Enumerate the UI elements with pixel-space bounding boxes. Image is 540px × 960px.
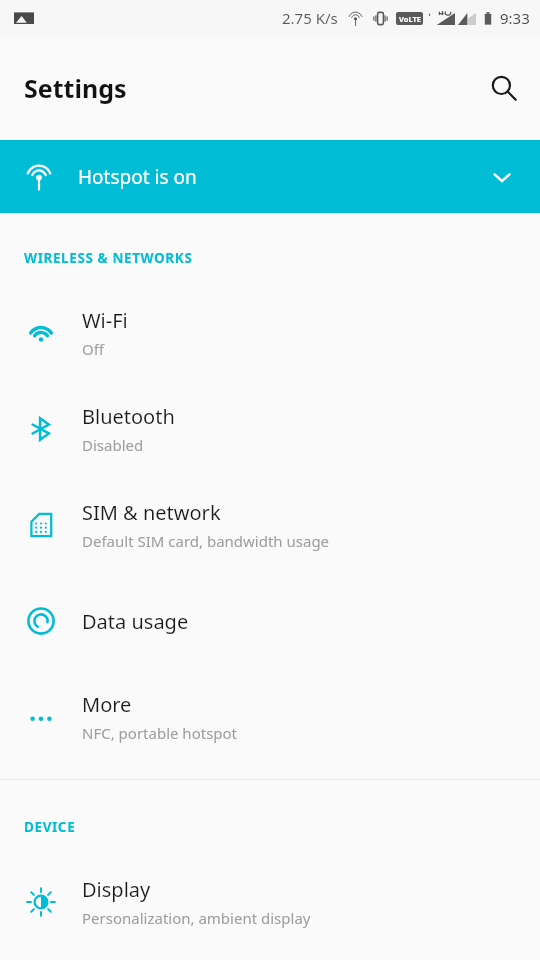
button[interactable]: Expand hotspot details [482, 157, 522, 197]
staticText: DEVICE [24, 818, 76, 836]
staticText: Settings [24, 71, 127, 105]
staticText: WIRELESS & NETWORKS [24, 249, 193, 267]
button[interactable]: Data usage [0, 573, 540, 669]
staticText: Wi-Fi [82, 307, 128, 334]
button[interactable]: Bluetooth [0, 381, 540, 477]
button[interactable]: Hotspot is on [0, 140, 540, 213]
button[interactable]: SIM & network [0, 477, 540, 573]
staticText: Off [82, 339, 105, 359]
staticText: NFC, portable hotspot [82, 723, 238, 743]
button[interactable]: Search [480, 64, 528, 112]
button[interactable]: Wi-Fi [0, 285, 540, 381]
staticText: Data usage [82, 608, 189, 635]
staticText: Display [82, 876, 151, 903]
staticText: Disabled [82, 435, 144, 455]
staticText: Hotspot is on [78, 164, 197, 190]
staticText: VoLTE [399, 14, 421, 24]
button[interactable]: More [0, 669, 540, 765]
button[interactable]: Display [0, 854, 540, 950]
staticText: Default SIM card, bandwidth usage [82, 531, 330, 551]
staticText: SIM & network [82, 499, 221, 526]
staticText: More [82, 691, 132, 718]
staticText: 9:33 [500, 8, 530, 28]
staticText: Personalization, ambient display [82, 908, 311, 928]
staticText: Bluetooth [82, 403, 175, 430]
staticText: 2.75 K/s [282, 8, 338, 28]
